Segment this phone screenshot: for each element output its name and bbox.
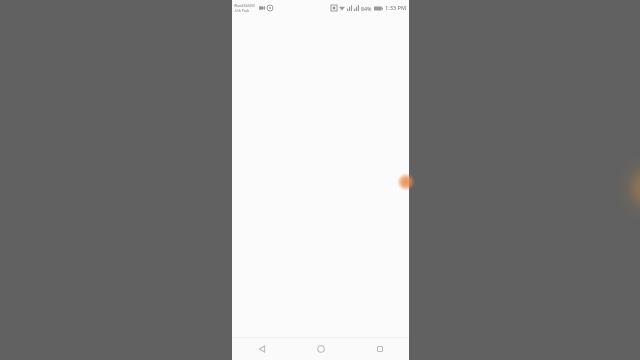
staticText: 1:33 PM: [385, 4, 407, 12]
staticText: Wand344490: [234, 3, 255, 8]
button[interactable]: Back: [232, 338, 291, 360]
staticText: 84%: [361, 5, 372, 12]
button[interactable]: Home: [291, 338, 350, 360]
button[interactable]: Recent apps: [350, 338, 409, 360]
staticText: -Uth Pack: [234, 8, 250, 13]
